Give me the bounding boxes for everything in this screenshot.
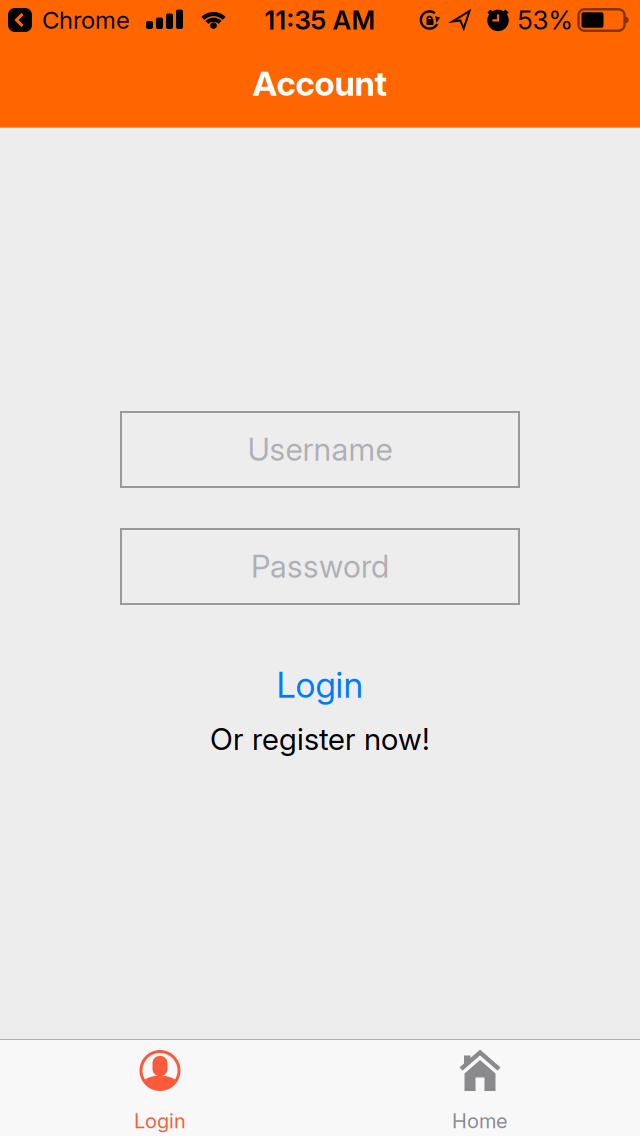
textField[interactable]: Username	[121, 412, 519, 487]
staticText: 11:35 AM	[264, 4, 375, 36]
staticText: Password	[251, 548, 389, 585]
button[interactable]: Or register now!	[210, 719, 430, 759]
button[interactable]: Login	[276, 663, 363, 707]
button[interactable]: Home	[320, 1040, 640, 1136]
staticText: Login	[276, 664, 363, 706]
staticText: Home	[452, 1109, 508, 1133]
staticText: Username	[247, 431, 392, 468]
button[interactable]: Back to Chrome	[8, 5, 130, 34]
staticText: 53%	[517, 4, 572, 36]
staticText: Chrome	[42, 5, 130, 34]
staticText: Login	[134, 1109, 186, 1133]
staticText: Or register now!	[210, 721, 430, 757]
button[interactable]: Login	[0, 1040, 320, 1136]
secureTextField[interactable]: Password	[121, 529, 519, 604]
staticText: Account	[252, 63, 387, 104]
